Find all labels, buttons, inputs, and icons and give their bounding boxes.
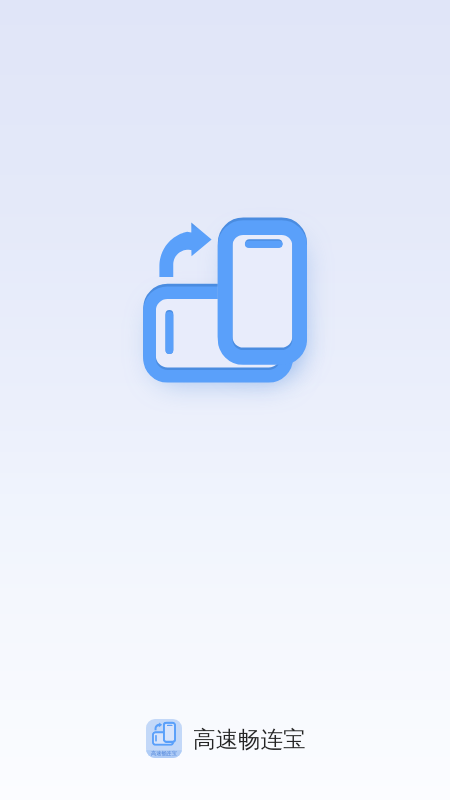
other: 高速畅连宝 应用图标 — [146, 719, 182, 758]
button[interactable]: 高速畅连宝 应用图标 — [146, 719, 306, 758]
staticText: 高速畅连宝 — [151, 750, 177, 757]
staticText: 高速畅连宝 — [193, 725, 306, 753]
